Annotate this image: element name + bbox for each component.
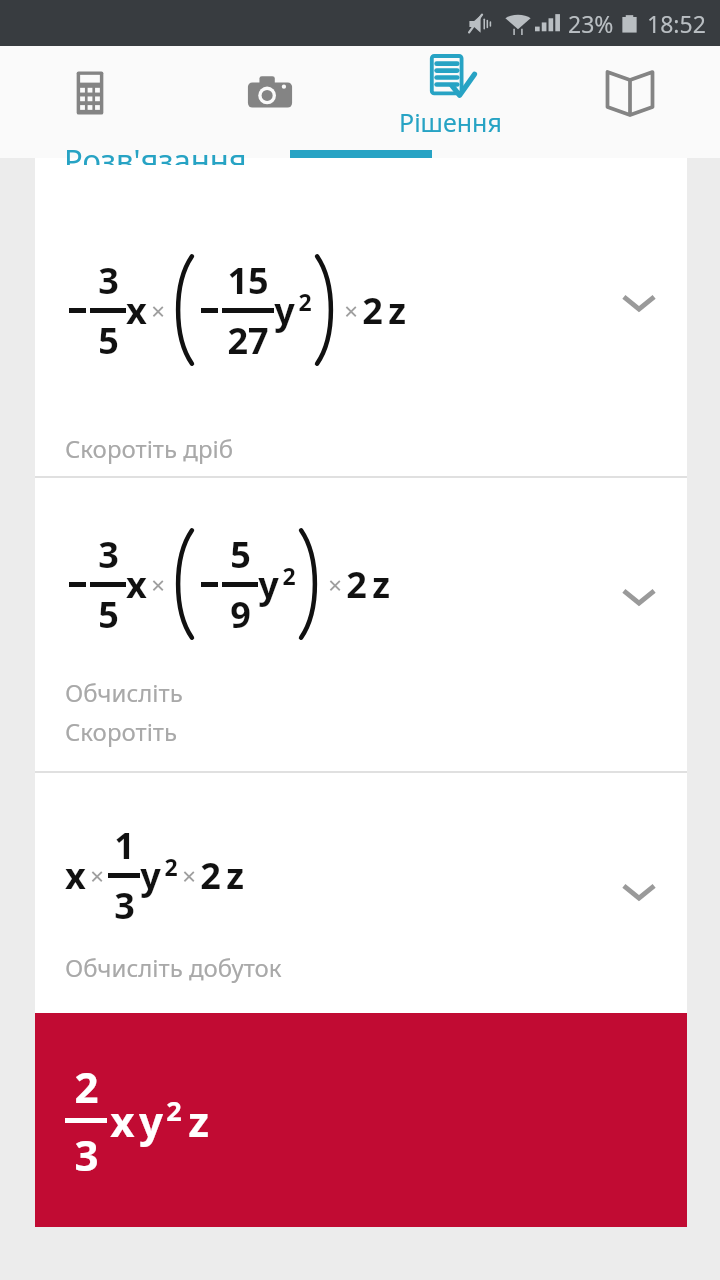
staticText: Скоротіть дріб xyxy=(65,432,233,465)
staticText: y xyxy=(140,851,161,900)
staticText: Розв'язання xyxy=(64,139,247,165)
button[interactable]: Expand step xyxy=(621,292,657,314)
staticText: z xyxy=(388,286,406,335)
staticText: × xyxy=(151,294,165,327)
staticText: 18:52 xyxy=(647,8,706,39)
staticText: Обчисліть xyxy=(65,676,183,709)
staticText: 2 xyxy=(74,1058,99,1115)
staticText: × xyxy=(90,859,104,892)
staticText: × xyxy=(151,568,165,601)
staticText: 2 xyxy=(346,560,367,609)
staticText: y xyxy=(139,1092,163,1149)
button[interactable]: 3 xyxy=(35,478,687,771)
staticText: 5 xyxy=(98,316,119,365)
button[interactable]: Textbook xyxy=(540,46,720,158)
staticText: x xyxy=(126,560,147,609)
staticText: 23% xyxy=(568,8,614,39)
staticText: Скоротіть xyxy=(65,715,178,748)
button[interactable]: 3 xyxy=(35,184,687,476)
staticText: 2 xyxy=(298,286,312,317)
staticText: 3 xyxy=(98,530,119,579)
staticText: 5 xyxy=(230,530,251,579)
staticText: y xyxy=(258,560,279,609)
staticText: 5 xyxy=(98,590,119,639)
staticText: x xyxy=(110,1092,135,1149)
staticText: x xyxy=(65,851,86,900)
button[interactable]: Рішення xyxy=(360,46,540,158)
staticText: 1 xyxy=(114,821,135,870)
staticText: 3 xyxy=(114,881,135,930)
button[interactable]: x xyxy=(35,773,687,1013)
staticText: y xyxy=(274,286,295,335)
staticText: x xyxy=(126,286,147,335)
staticText: 27 xyxy=(227,316,269,365)
staticText: z xyxy=(372,560,390,609)
staticText: × xyxy=(328,568,342,601)
button[interactable]: Calculator xyxy=(0,46,180,158)
staticText: z xyxy=(226,851,244,900)
staticText: 9 xyxy=(230,590,251,639)
staticText: 2 xyxy=(200,851,221,900)
staticText: × xyxy=(344,294,358,327)
staticText: Обчисліть добуток xyxy=(65,951,282,984)
staticText: × xyxy=(182,859,196,892)
button[interactable]: Camera xyxy=(180,46,360,158)
staticText: 3 xyxy=(74,1126,99,1183)
button[interactable]: Expand step xyxy=(621,586,657,608)
staticText: Рішення xyxy=(399,105,502,139)
staticText: 3 xyxy=(98,256,119,305)
button[interactable]: Expand step xyxy=(621,881,657,903)
staticText: 2 xyxy=(166,1092,182,1129)
staticText: 2 xyxy=(164,851,178,882)
button[interactable]: 2 xyxy=(35,1013,687,1227)
staticText: 2 xyxy=(362,286,383,335)
staticText: 15 xyxy=(227,256,269,305)
staticText: 2 xyxy=(282,560,296,591)
staticText: z xyxy=(188,1092,209,1149)
